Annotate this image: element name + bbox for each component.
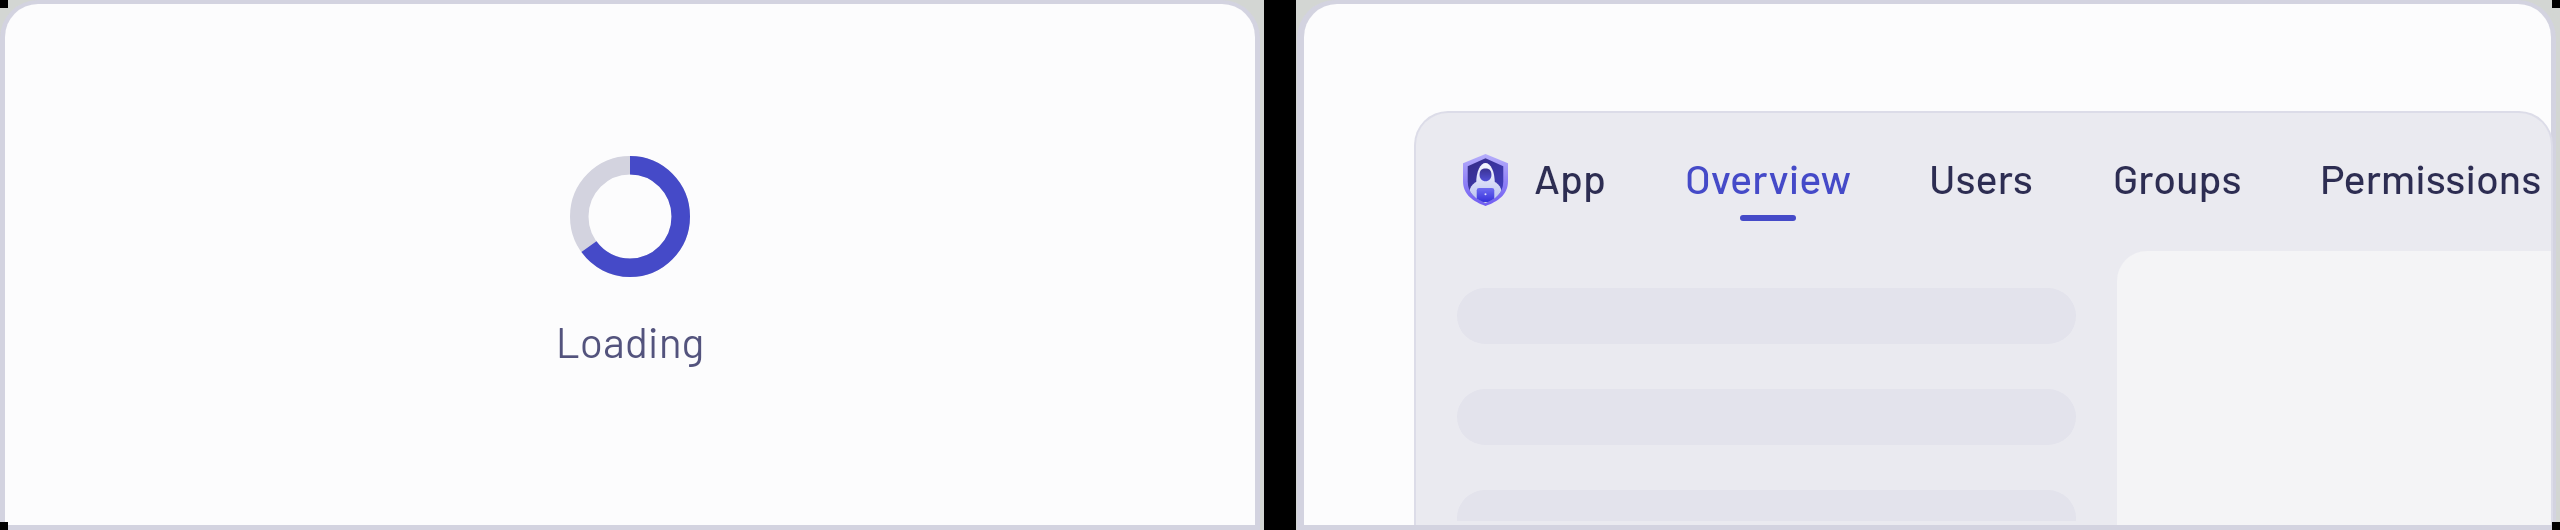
button[interactable]: Users (1929, 153, 2033, 203)
button[interactable]: Groups (2113, 153, 2242, 203)
button[interactable]: Overview (1685, 153, 1852, 203)
staticText: Loading (480, 315, 780, 366)
button[interactable]: App (1534, 153, 1607, 203)
staticText: App (1534, 153, 1607, 203)
button[interactable]: Permissions (2320, 153, 2542, 203)
staticText: Permissions (2320, 153, 2542, 203)
button[interactable]: App logo (1463, 154, 1508, 206)
staticText: Users (1929, 153, 2033, 203)
staticText: Overview (1685, 153, 1852, 203)
staticText: Groups (2113, 153, 2242, 203)
